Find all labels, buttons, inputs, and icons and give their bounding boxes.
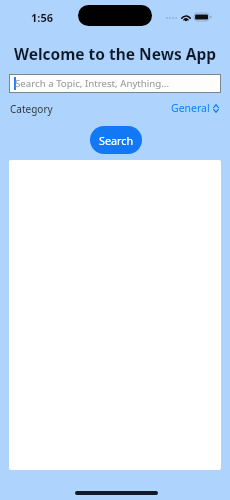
staticText: Category [10,102,53,116]
button[interactable]: Search a Topic, Intrest, Anything... [9,74,221,93]
other: Wi-Fi [181,13,191,21]
staticText: General [171,101,210,115]
button[interactable]: Search [90,126,142,154]
staticText: 1:56 [31,10,53,25]
staticText: Search a Topic, Intrest, Anything... [15,77,170,90]
other: Pick category [213,104,219,113]
button[interactable]: General [171,101,219,115]
staticText: Welcome to the News App [0,43,230,64]
other: Cellular signal [166,16,178,20]
staticText: Search [99,133,134,148]
